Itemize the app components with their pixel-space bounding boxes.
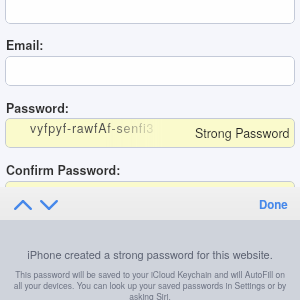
staticText: Done: [259, 196, 288, 212]
button[interactable]: [5, 56, 295, 86]
staticText: Strong Password: [195, 124, 290, 142]
button[interactable]: Next field: [34, 194, 63, 216]
staticText: iPhone created a strong password for thi…: [27, 246, 273, 262]
button[interactable]: Previous field: [8, 194, 37, 216]
button[interactable]: vyfpyf-rawfAf-senfi3: [5, 118, 295, 148]
button[interactable]: [5, 181, 295, 200]
staticText: Password:: [6, 99, 70, 117]
staticText: Email:: [6, 36, 44, 54]
staticText: Confirm Password:: [6, 161, 121, 179]
button[interactable]: Done: [247, 190, 300, 218]
button[interactable]: [5, 0, 295, 24]
staticText: This password will be saved to your iClo…: [12, 268, 288, 300]
staticText: vyfpyf-rawfAf-senfi3: [30, 119, 155, 137]
